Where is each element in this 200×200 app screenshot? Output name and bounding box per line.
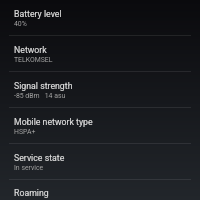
staticText: TELKOMSEL bbox=[14, 56, 53, 64]
staticText: In service bbox=[14, 164, 44, 172]
staticText: Signal strength bbox=[14, 81, 73, 91]
staticText: Network bbox=[14, 45, 47, 55]
button[interactable]: Battery level bbox=[0, 0, 200, 36]
staticText: -85 dBm 14 asu bbox=[14, 92, 66, 100]
staticText: Service state bbox=[14, 153, 65, 163]
staticText: HSPA+ bbox=[14, 128, 36, 136]
button[interactable]: Roaming bbox=[0, 179, 200, 200]
staticText: 40% bbox=[14, 20, 27, 28]
button[interactable]: Network bbox=[0, 36, 200, 72]
staticText: Roaming bbox=[14, 188, 49, 198]
button[interactable]: Service state bbox=[0, 144, 200, 180]
staticText: Battery level bbox=[14, 9, 62, 19]
button[interactable]: Mobile network type bbox=[0, 108, 200, 144]
staticText: Mobile network type bbox=[14, 117, 93, 127]
button[interactable]: Signal strength bbox=[0, 72, 200, 108]
